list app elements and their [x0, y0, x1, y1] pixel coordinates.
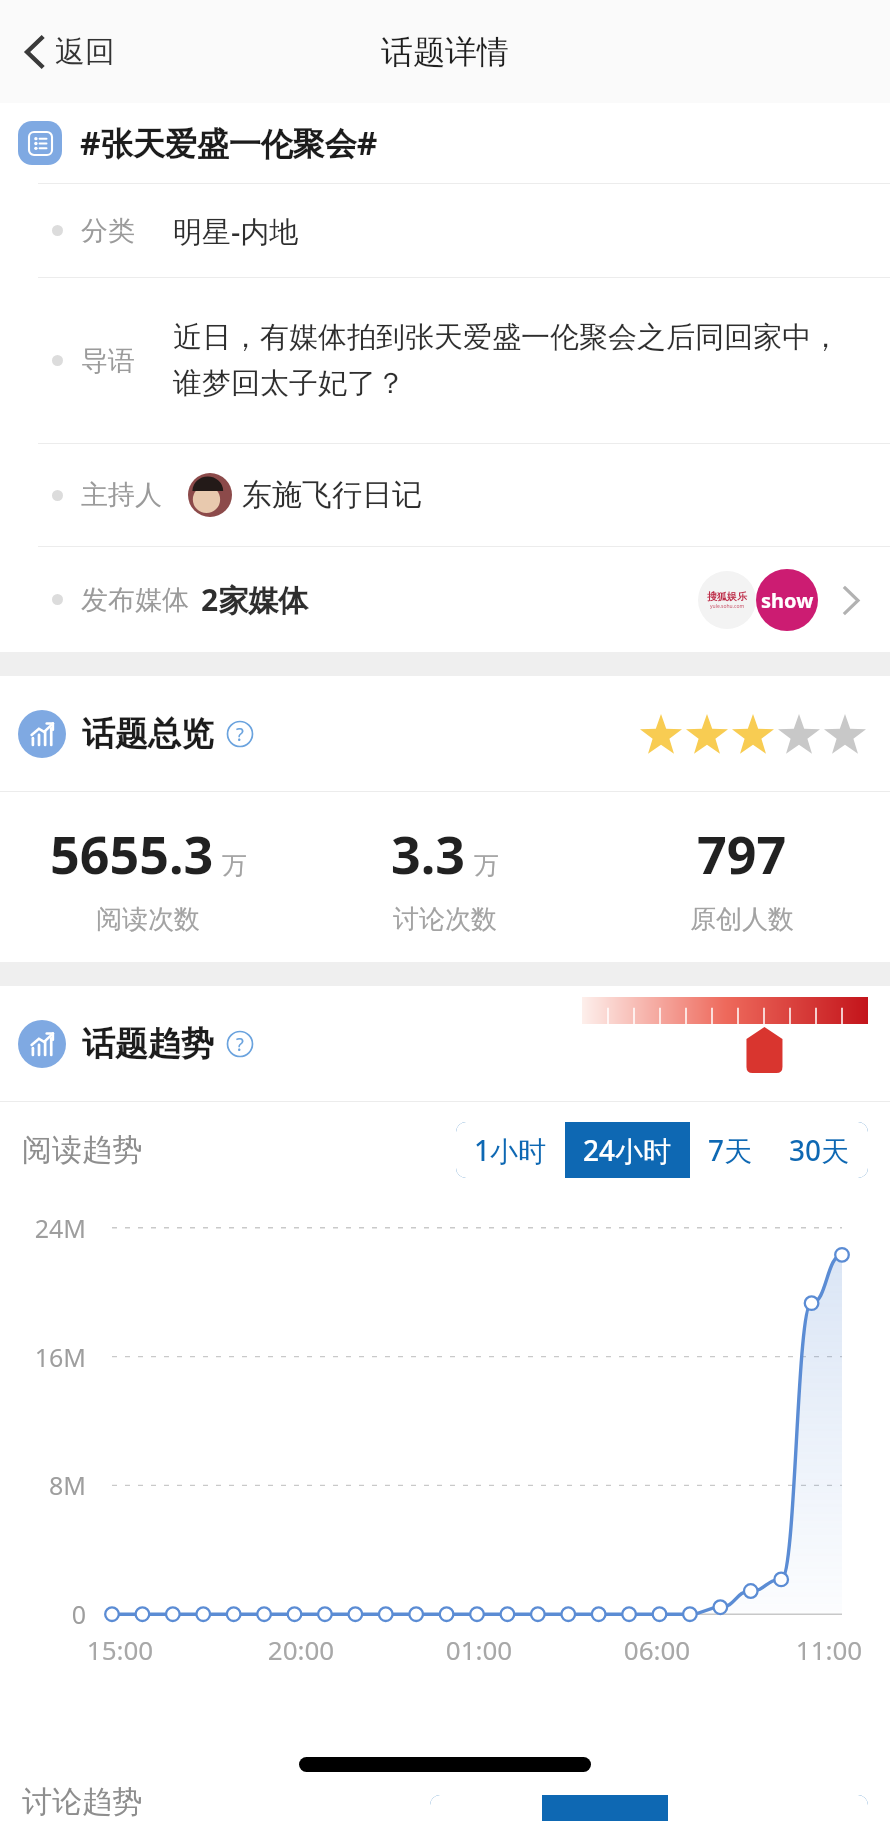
staticText: 01:00 [431, 1632, 527, 1667]
staticText: 万 [222, 850, 247, 881]
staticText: 0 [16, 1597, 86, 1631]
button[interactable]: 说明 [226, 720, 254, 748]
button[interactable]: 7天 [690, 1122, 771, 1178]
staticText: ? [236, 1032, 244, 1057]
button[interactable]: 导语 [0, 278, 890, 443]
staticText: 讨论次数 [393, 903, 497, 936]
staticText: show [761, 587, 814, 614]
button[interactable]: #张天爱盛一伦聚会# [0, 103, 890, 183]
button[interactable]: 30天 [771, 1122, 868, 1178]
staticText: 1小时 [474, 1131, 547, 1169]
staticText: 24M [16, 1211, 86, 1245]
staticText: 发布媒体 [81, 583, 189, 617]
staticText: 16M [16, 1340, 86, 1374]
button[interactable]: 1小时 [456, 1122, 565, 1178]
staticText: yule.sohu.com [710, 603, 745, 610]
staticText: 万 [474, 850, 499, 881]
staticText: 东施飞行日记 [242, 476, 422, 514]
staticText: 导语 [81, 344, 135, 378]
staticText: 分类 [81, 214, 135, 248]
button[interactable]: 24小时 [565, 1122, 690, 1178]
button[interactable]: 5655.3 [0, 792, 296, 962]
button[interactable]: 返回 [14, 23, 125, 81]
staticText: 11:00 [781, 1632, 877, 1667]
staticText: 话题总览 [82, 713, 214, 755]
staticText: 8M [16, 1468, 86, 1502]
staticText: 讨论趋势 [22, 1783, 142, 1821]
staticText: 30天 [789, 1131, 850, 1169]
staticText: 阅读趋势 [22, 1131, 142, 1169]
staticText: 明星-内地 [173, 211, 299, 251]
staticText: 24小时 [583, 1131, 672, 1169]
staticText: 06:00 [609, 1632, 705, 1667]
staticText: 话题详情 [381, 32, 509, 72]
button[interactable]: 主持人 [0, 444, 890, 546]
button[interactable]: 3.3 [296, 792, 593, 962]
button[interactable]: 797 [593, 792, 890, 962]
button[interactable]: 查看媒体列表 [834, 583, 868, 617]
staticText: ? [236, 722, 244, 747]
staticText: 2家媒体 [201, 579, 309, 620]
staticText: 3.3 [391, 818, 466, 889]
button[interactable]: 说明 [226, 1030, 254, 1058]
staticText: 原创人数 [690, 903, 794, 936]
staticText: 5655.3 [50, 818, 214, 889]
staticText: 返回 [55, 33, 115, 71]
staticText: #张天爱盛一伦聚会# [80, 121, 378, 165]
staticText: 主持人 [81, 478, 162, 512]
staticText: 话题趋势 [82, 1023, 214, 1065]
staticText: 阅读次数 [96, 903, 200, 936]
staticText: 20:00 [253, 1632, 349, 1667]
staticText: 近日，有媒体拍到张天爱盛一伦聚会之后同回家中，谁梦回太子妃了？ [173, 319, 868, 402]
staticText: 搜狐娱乐 [707, 590, 747, 603]
staticText: 7天 [708, 1131, 753, 1169]
button[interactable]: 发布媒体 [0, 547, 890, 652]
button[interactable]: 分类 [0, 184, 890, 277]
staticText: 797 [697, 818, 787, 889]
staticText: 15:00 [72, 1632, 168, 1667]
